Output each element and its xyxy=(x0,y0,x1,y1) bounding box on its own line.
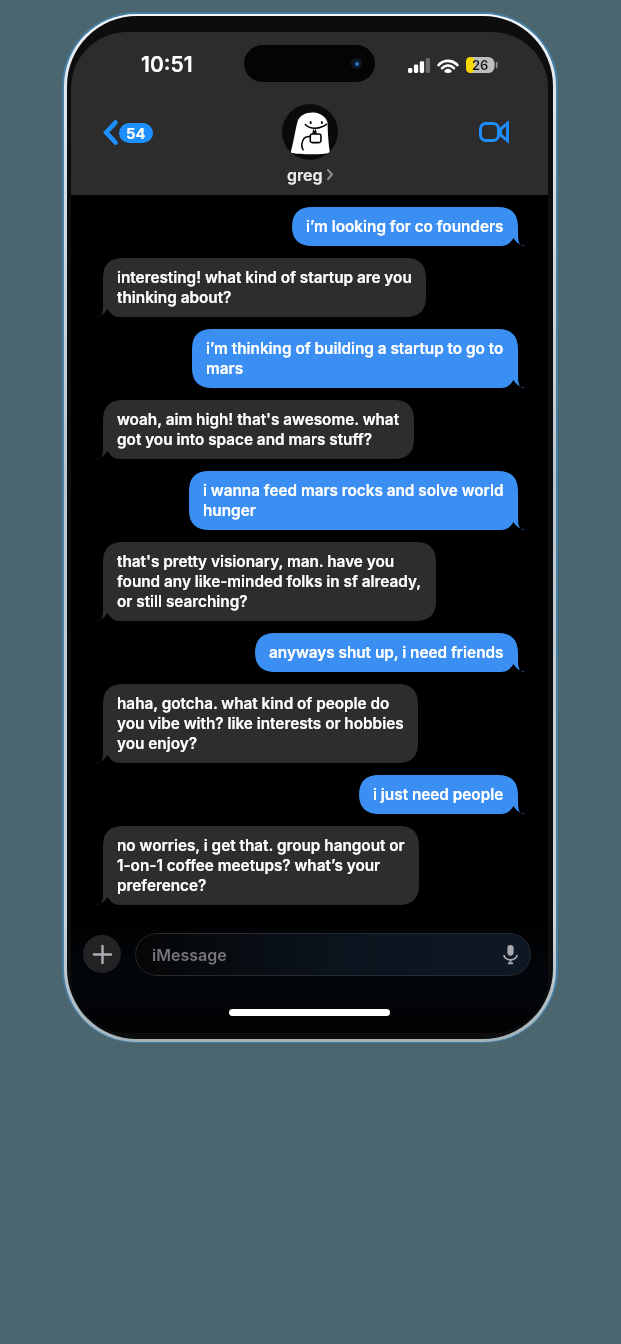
staticText: 10:51 xyxy=(141,52,193,77)
staticText: interesting! what kind of startup are yo… xyxy=(117,268,412,307)
staticText: 26 xyxy=(472,57,489,73)
staticText: that's pretty visionary, man. have you f… xyxy=(117,552,422,611)
button[interactable]: that's pretty visionary, man. have you f… xyxy=(103,542,436,621)
button[interactable]: i wanna feed mars rocks and solve world … xyxy=(189,471,518,530)
other: greg profile photo xyxy=(282,104,338,160)
staticText: woah, aim high! that's awesome. what got… xyxy=(117,410,400,449)
button[interactable]: haha, gotcha. what kind of people do you… xyxy=(103,684,418,763)
button[interactable]: 54 xyxy=(98,113,159,152)
button[interactable]: iMessage xyxy=(135,933,531,976)
button[interactable]: i’m looking for co founders xyxy=(292,207,518,246)
staticText: i’m thinking of building a startup to go… xyxy=(206,339,504,378)
button[interactable]: FaceTime video call xyxy=(472,110,516,154)
staticText: i wanna feed mars rocks and solve world … xyxy=(203,481,504,520)
staticText: greg xyxy=(287,165,323,184)
button[interactable]: no worries, i get that. group hangout or… xyxy=(103,826,419,905)
staticText: no worries, i get that. group hangout or… xyxy=(117,836,405,895)
button[interactable]: anyways shut up, i need friends xyxy=(255,633,518,672)
staticText: i just need people xyxy=(373,785,504,804)
button[interactable]: Add attachment xyxy=(83,935,121,973)
staticText: 54 xyxy=(126,124,146,142)
staticText: iMessage xyxy=(152,945,227,964)
staticText: anyways shut up, i need friends xyxy=(269,643,504,662)
button[interactable]: i just need people xyxy=(359,775,518,814)
button[interactable]: interesting! what kind of startup are yo… xyxy=(103,258,426,317)
staticText: i’m looking for co founders xyxy=(306,217,504,236)
button[interactable]: i’m thinking of building a startup to go… xyxy=(192,329,518,388)
button[interactable]: woah, aim high! that's awesome. what got… xyxy=(103,400,414,459)
staticText: haha, gotcha. what kind of people do you… xyxy=(117,694,404,753)
